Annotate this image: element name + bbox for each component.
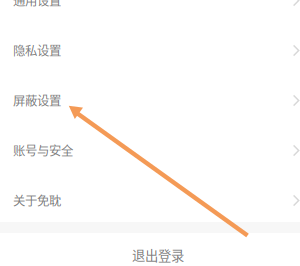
staticText: 隐私设置 <box>13 41 61 59</box>
button[interactable]: 屏蔽设置 <box>0 75 300 125</box>
staticText: 屏蔽设置 <box>13 91 61 109</box>
staticText: 退出登录 <box>132 245 184 265</box>
staticText: 账号与安全 <box>13 141 73 159</box>
button[interactable]: 关于免耽 <box>0 175 300 225</box>
button[interactable]: 隐私设置 <box>0 25 300 75</box>
button[interactable]: 通用设置 <box>0 0 300 25</box>
staticText: 关于免耽 <box>13 191 61 209</box>
button[interactable]: 账号与安全 <box>0 125 300 175</box>
staticText: 通用设置 <box>13 0 61 9</box>
button[interactable]: 退出登录 <box>8 235 300 266</box>
